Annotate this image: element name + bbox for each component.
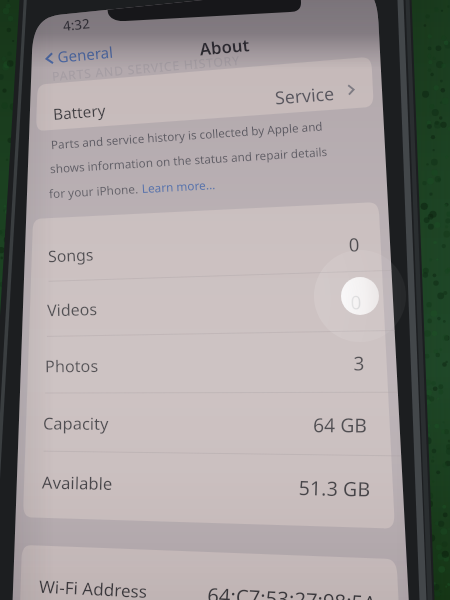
staticText: Photos bbox=[45, 355, 98, 378]
staticText: 64 GB bbox=[313, 412, 368, 439]
staticText: 4:32 bbox=[62, 14, 91, 35]
button[interactable]: Songs bbox=[48, 244, 94, 267]
button[interactable]: Capacity bbox=[43, 412, 109, 435]
staticText: Battery bbox=[52, 100, 107, 125]
other: Open service history bbox=[346, 82, 355, 97]
button[interactable]: for your iPhone. bbox=[48, 176, 216, 202]
staticText: About bbox=[199, 33, 250, 60]
staticText: 3 bbox=[353, 350, 365, 377]
staticText: Wi-Fi Address bbox=[38, 575, 147, 600]
staticText: 64:C7:53:27:98:5A bbox=[207, 581, 377, 600]
staticText: Songs bbox=[48, 244, 94, 267]
staticText: Learn more... bbox=[141, 176, 216, 197]
staticText: General bbox=[57, 42, 114, 68]
other: Back to General bbox=[44, 51, 55, 66]
staticText: 51.3 GB bbox=[298, 474, 371, 503]
button[interactable]: Photos bbox=[45, 355, 98, 378]
button[interactable]: Wi-Fi Address bbox=[38, 575, 147, 600]
staticText: for your iPhone. bbox=[48, 180, 142, 202]
staticText: Service bbox=[274, 81, 336, 110]
button[interactable]: Back to General bbox=[44, 42, 114, 69]
button[interactable]: Available bbox=[42, 471, 113, 495]
staticText: Capacity bbox=[43, 412, 109, 435]
staticText: 0 bbox=[350, 289, 362, 316]
staticText: Videos bbox=[47, 298, 98, 322]
staticText: 0 bbox=[348, 232, 360, 258]
button[interactable]: Videos bbox=[47, 298, 98, 322]
staticText: PARTS AND SERVICE HISTORY bbox=[51, 51, 240, 84]
staticText: shows information on the status and repa… bbox=[49, 143, 328, 177]
staticText: Parts and service history is collected b… bbox=[50, 118, 323, 153]
button[interactable]: Battery bbox=[52, 100, 107, 125]
staticText: Available bbox=[42, 471, 113, 495]
